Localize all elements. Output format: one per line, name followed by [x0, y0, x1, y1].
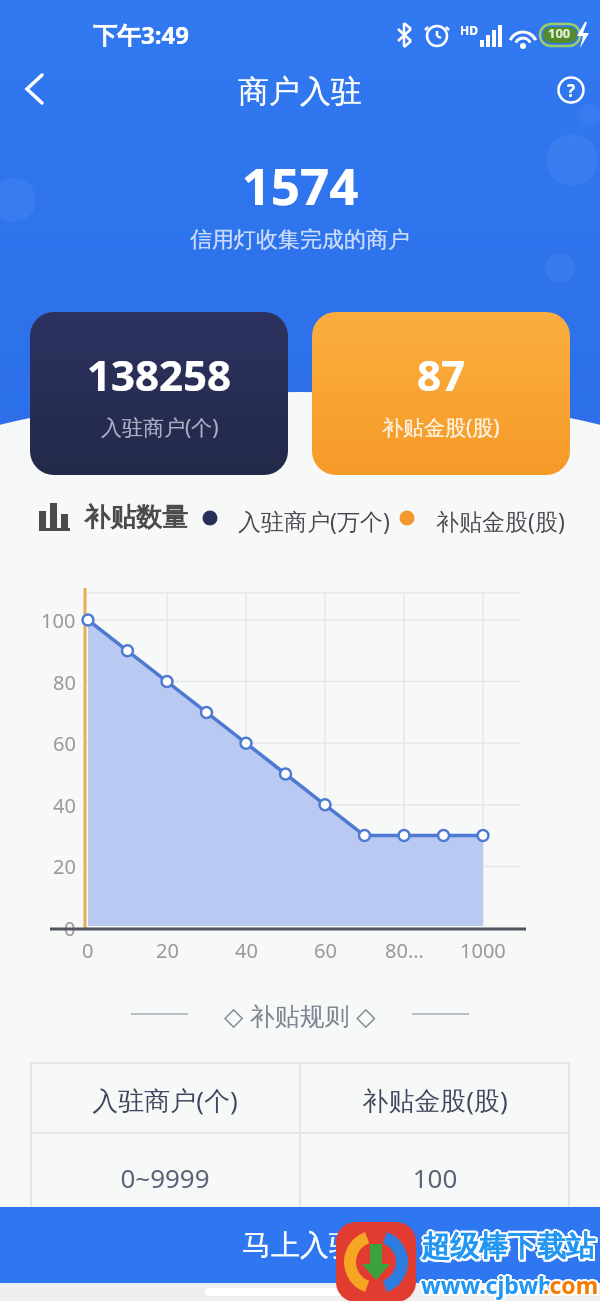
- staticText: www.cjbwh: [423, 1271, 556, 1301]
- staticText: 补贴金股(股): [436, 505, 565, 536]
- button[interactable]: ?: [556, 75, 586, 105]
- staticText: 40: [235, 937, 258, 964]
- staticText: 100: [300, 1160, 570, 1195]
- staticText: .com: [545, 1268, 600, 1299]
- staticText: 1000: [460, 937, 506, 964]
- staticText: 0: [64, 915, 76, 942]
- staticText: .com: [545, 1271, 600, 1301]
- staticText: 100: [41, 607, 76, 634]
- staticText: 超级棒下载站: [420, 1227, 594, 1264]
- staticText: ◇ 补贴规则 ◇: [224, 998, 376, 1030]
- staticText: .com: [543, 1267, 599, 1298]
- staticText: .com: [542, 1271, 598, 1301]
- staticText: .com: [541, 1269, 597, 1300]
- staticText: 补贴金股(股): [300, 1082, 570, 1118]
- staticText: 0~9999: [30, 1160, 300, 1195]
- staticText: .com: [543, 1269, 599, 1300]
- staticText: HD: [460, 22, 478, 38]
- staticText: 40: [53, 792, 76, 819]
- staticText: 补贴数量: [84, 501, 188, 534]
- staticText: 超级棒下载站: [421, 1226, 595, 1263]
- staticText: 20: [156, 937, 179, 964]
- staticText: 下午3:49: [93, 18, 189, 51]
- staticText: 60: [314, 937, 337, 964]
- staticText: www.cjbwh: [420, 1268, 553, 1299]
- button[interactable]: 138258: [30, 312, 288, 475]
- staticText: www.cjbwh: [421, 1271, 554, 1301]
- staticText: .com: [543, 1271, 599, 1301]
- staticText: 87: [417, 346, 466, 403]
- staticText: 超级棒下载站: [423, 1227, 597, 1264]
- button[interactable]: [12, 72, 56, 116]
- staticText: 超级棒下载站: [421, 1228, 595, 1265]
- staticText: 补贴金股(股): [382, 413, 500, 442]
- staticText: 入驻商户(万个): [238, 505, 390, 536]
- staticText: 20: [53, 853, 76, 880]
- staticText: 80: [53, 669, 76, 696]
- staticText: www.cjbwh: [423, 1269, 556, 1300]
- staticText: www.cjbwh: [423, 1268, 556, 1299]
- staticText: 1574: [0, 150, 600, 219]
- staticText: 超级棒下载站: [421, 1230, 595, 1267]
- staticText: 超级棒下载站: [423, 1228, 597, 1265]
- staticText: 超级棒下载站: [420, 1230, 594, 1267]
- staticText: 入驻商户(个): [30, 1082, 300, 1118]
- staticText: 60: [53, 730, 76, 757]
- staticText: 80...: [385, 937, 424, 964]
- staticText: 信用灯收集完成的商户: [0, 226, 600, 254]
- staticText: 超级棒下载站: [419, 1228, 593, 1265]
- staticText: 入驻商户(个): [101, 413, 219, 442]
- staticText: www.cjbwh: [420, 1271, 553, 1301]
- button[interactable]: 87: [312, 312, 570, 475]
- staticText: 138258: [87, 346, 232, 403]
- staticText: .com: [542, 1268, 598, 1299]
- staticText: www.cjbwh: [419, 1269, 552, 1300]
- staticText: ?: [567, 79, 576, 102]
- staticText: 商户入驻: [0, 72, 600, 111]
- staticText: .com: [545, 1269, 600, 1300]
- staticText: 0: [82, 937, 94, 964]
- staticText: www.cjbwh: [421, 1269, 554, 1300]
- staticText: www.cjbwh: [421, 1267, 554, 1298]
- staticText: 100: [548, 24, 571, 42]
- staticText: 超级棒下载站: [423, 1230, 597, 1267]
- button[interactable]: 马上入驻: [0, 1207, 600, 1283]
- staticText: 马上入驻: [242, 1227, 358, 1264]
